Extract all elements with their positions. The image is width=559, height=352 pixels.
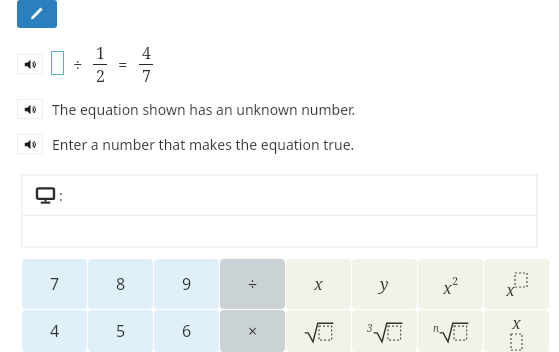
other: Display bbox=[37, 187, 54, 204]
button[interactable]: x squared bbox=[418, 259, 483, 309]
button[interactable]: 4 bbox=[22, 310, 87, 352]
button[interactable]: multiply bbox=[220, 310, 285, 352]
button[interactable]: 6 bbox=[154, 310, 219, 352]
staticText: × bbox=[248, 320, 258, 342]
button[interactable]: x bbox=[286, 259, 351, 309]
staticText: 2 bbox=[96, 65, 105, 87]
staticText: 4 bbox=[142, 42, 151, 64]
staticText: = bbox=[118, 53, 128, 76]
staticText: x bbox=[506, 279, 515, 301]
button[interactable]: square root bbox=[286, 310, 351, 352]
button[interactable]: y bbox=[352, 259, 417, 309]
staticText: The equation shown has an unknown number… bbox=[52, 100, 356, 119]
staticText: ÷ bbox=[248, 273, 258, 295]
button[interactable]: Play audio bbox=[17, 99, 43, 119]
button[interactable]: 5 bbox=[88, 310, 153, 352]
staticText: 6 bbox=[182, 320, 192, 342]
button[interactable]: Edit bbox=[17, 0, 57, 28]
staticText: 7 bbox=[142, 65, 151, 87]
staticText: ÷ bbox=[73, 53, 83, 76]
button[interactable]: divide bbox=[220, 259, 285, 309]
button[interactable]: Play audio bbox=[17, 54, 43, 74]
button[interactable] bbox=[51, 51, 64, 75]
staticText: 3 bbox=[367, 321, 373, 335]
staticText: 8 bbox=[116, 273, 126, 295]
staticText: 5 bbox=[116, 320, 126, 342]
staticText: x bbox=[314, 273, 323, 295]
staticText: 2 bbox=[452, 273, 459, 288]
staticText: 7 bbox=[50, 273, 60, 295]
button[interactable]: fraction x over box bbox=[484, 310, 549, 352]
staticText: 4 bbox=[50, 320, 60, 342]
button[interactable]: 7 bbox=[22, 259, 87, 309]
staticText: y bbox=[380, 273, 389, 295]
staticText: : bbox=[59, 186, 63, 205]
staticText: 1 bbox=[96, 42, 105, 64]
button[interactable]: nth root bbox=[418, 310, 483, 352]
staticText: 9 bbox=[182, 273, 192, 295]
staticText: x bbox=[443, 277, 452, 299]
staticText: Enter a number that makes the equation t… bbox=[52, 135, 355, 154]
staticText: n bbox=[433, 321, 439, 335]
button[interactable]: 8 bbox=[88, 259, 153, 309]
button[interactable]: x to the n bbox=[484, 259, 549, 309]
button[interactable]: 9 bbox=[154, 259, 219, 309]
button[interactable]: cube root bbox=[352, 310, 417, 352]
button[interactable]: Play audio bbox=[17, 134, 43, 154]
staticText: x bbox=[512, 312, 521, 334]
